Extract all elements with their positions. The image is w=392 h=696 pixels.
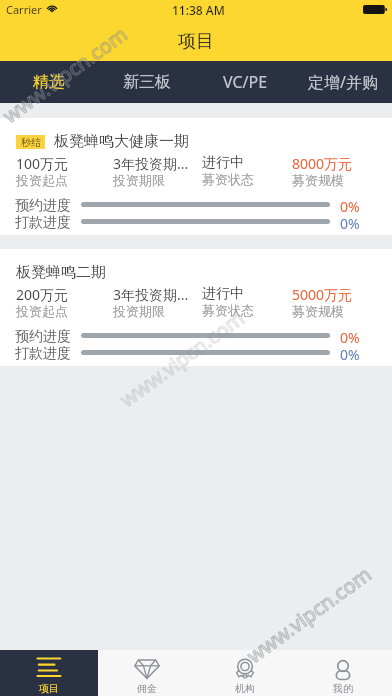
staticText: 3年投资期... — [113, 154, 189, 173]
staticText: VC/PE — [223, 71, 268, 93]
staticText: 投资期限 — [113, 303, 165, 319]
staticText: 0% — [340, 214, 360, 229]
staticText: 项目 — [178, 30, 214, 53]
staticText: 进行中 — [202, 154, 244, 172]
staticText: 打款进度 — [15, 345, 71, 360]
staticText: 募资状态 — [202, 302, 254, 318]
button[interactable]: 佣金 — [98, 650, 196, 696]
staticText: 定增/并购 — [308, 71, 378, 93]
button[interactable]: 项目 — [0, 650, 98, 696]
staticText: 0% — [340, 328, 360, 343]
staticText: www.vipcn.com — [0, 20, 133, 129]
staticText: 进行中 — [202, 285, 244, 303]
staticText: Carrier — [6, 2, 42, 17]
staticText: 投资起点 — [16, 172, 68, 188]
staticText: 募资规模 — [292, 172, 344, 188]
button[interactable]: 我的 — [294, 650, 392, 696]
staticText: 100万元 — [16, 154, 69, 173]
button[interactable]: 秒结 — [0, 118, 392, 235]
staticText: 板凳蝉鸣二期 — [16, 263, 106, 282]
staticText: 打款进度 — [15, 214, 71, 229]
staticText: 募资状态 — [202, 171, 254, 187]
staticText: 佣金 — [137, 682, 157, 695]
staticText: 精选 — [33, 72, 65, 92]
button[interactable]: 新三板 — [98, 61, 196, 103]
staticText: 11:38 AM — [172, 2, 225, 18]
staticText: www.vipcn.com — [241, 560, 377, 669]
staticText: 募资规模 — [292, 303, 344, 319]
staticText: 0% — [340, 345, 360, 360]
staticText: 200万元 — [16, 285, 69, 304]
staticText: 我的 — [333, 682, 353, 695]
staticText: 3年投资期... — [113, 285, 189, 304]
staticText: 预约进度 — [15, 197, 71, 212]
staticText: 机构 — [235, 682, 255, 695]
button[interactable]: VC/PE — [196, 61, 294, 103]
button[interactable]: 精选 — [0, 61, 98, 103]
staticText: 0% — [340, 197, 360, 212]
staticText: 投资起点 — [16, 303, 68, 319]
staticText: 板凳蝉鸣大健康一期 — [54, 132, 189, 151]
staticText: 投资期限 — [113, 172, 165, 188]
staticText: 新三板 — [123, 72, 171, 92]
button[interactable]: 板凳蝉鸣二期 — [0, 249, 392, 366]
staticText: 8000万元 — [292, 154, 353, 173]
staticText: 5000万元 — [292, 285, 353, 304]
staticText: 项目 — [39, 682, 59, 695]
button[interactable]: 机构 — [196, 650, 294, 696]
button[interactable]: 定增/并购 — [294, 61, 392, 103]
staticText: www.vipcn.com — [114, 304, 250, 413]
staticText: 预约进度 — [15, 328, 71, 343]
staticText: 秒结 — [21, 136, 41, 149]
